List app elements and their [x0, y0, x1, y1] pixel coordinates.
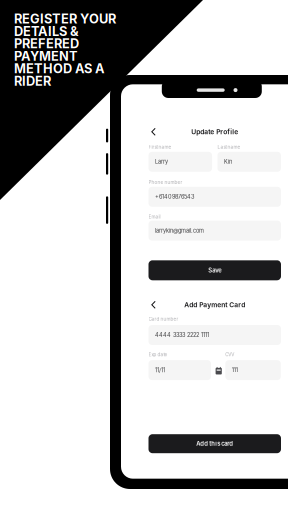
- staticText: Email: [148, 214, 160, 220]
- staticText: larrykin@gmail.com: [155, 227, 204, 234]
- button[interactable]: Back: [148, 300, 158, 310]
- staticText: Add this card: [196, 440, 233, 447]
- staticText: RIDER: [14, 73, 51, 89]
- staticText: Phone number: [148, 180, 182, 185]
- staticText: +61409876543: [155, 193, 194, 200]
- staticText: Card number: [148, 316, 178, 322]
- staticText: 11/11: [155, 367, 165, 373]
- staticText: DETAILS &: [14, 23, 79, 39]
- staticText: CVV: [225, 352, 234, 357]
- staticText: Save: [208, 267, 221, 274]
- staticText: Last name: [217, 144, 240, 150]
- button[interactable]: Back: [148, 127, 158, 137]
- button[interactable]: Add this card: [148, 434, 281, 453]
- staticText: Exp date: [148, 352, 167, 357]
- staticText: REGISTER YOUR: [14, 11, 116, 26]
- staticText: PAYMENT: [14, 48, 78, 64]
- staticText: 4444 3333 2222 1111: [155, 332, 209, 338]
- staticText: Kin: [224, 158, 232, 165]
- staticText: First name: [148, 144, 171, 150]
- staticText: Add Payment Card: [184, 301, 245, 309]
- staticText: PREFERED: [14, 36, 79, 51]
- staticText: Larry: [155, 158, 168, 165]
- button[interactable]: Save: [148, 260, 281, 280]
- staticText: Update Profile: [191, 128, 238, 136]
- staticText: METHOD AS A: [14, 61, 105, 76]
- staticText: 111: [232, 367, 238, 373]
